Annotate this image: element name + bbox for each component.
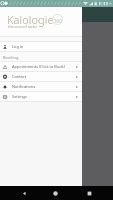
staticText: Settings [12, 94, 27, 99]
button[interactable]: Home [51, 189, 60, 198]
button[interactable]: Notifications [0, 82, 82, 91]
button[interactable]: Back [20, 189, 29, 198]
staticText: Booking [3, 55, 19, 60]
button[interactable]: Appointments (Click to Book) [0, 62, 82, 71]
staticText: Appointments (Click to Book) [12, 64, 65, 69]
button[interactable]: Log in [0, 42, 82, 51]
button[interactable]: Settings [0, 92, 82, 101]
staticText: Contact [12, 74, 27, 79]
staticText: Log in [12, 44, 24, 49]
staticText: thousand oaks [8, 24, 37, 29]
button[interactable]: Contact [0, 72, 82, 81]
staticText: 360 [54, 18, 62, 24]
staticText: Notifications [12, 84, 36, 89]
staticText: Kalologie [7, 12, 54, 27]
button[interactable]: Recent apps [85, 189, 94, 198]
